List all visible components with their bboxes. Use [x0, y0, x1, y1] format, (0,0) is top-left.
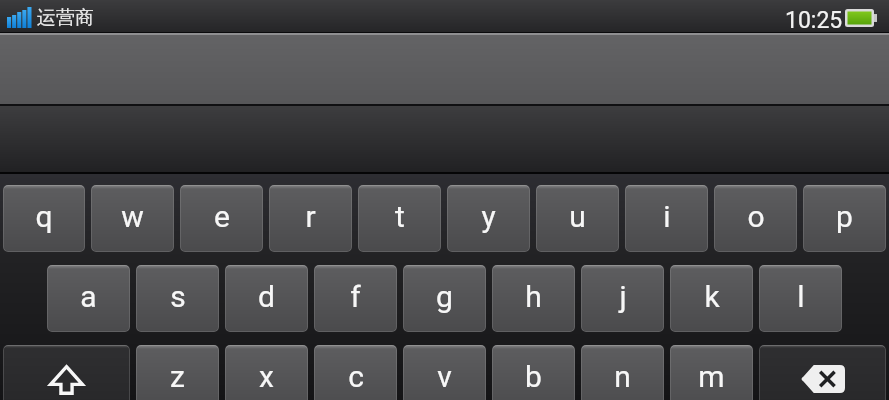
button[interactable]: v: [403, 345, 486, 400]
button[interactable]: c: [314, 345, 397, 400]
button[interactable]: j: [581, 265, 664, 332]
button[interactable]: p: [803, 185, 886, 252]
staticText: 10:25: [785, 7, 843, 34]
button[interactable]: l: [759, 265, 842, 332]
staticText: e: [214, 199, 230, 234]
staticText: v: [437, 359, 452, 394]
button[interactable]: y: [447, 185, 530, 252]
staticText: 运营商: [37, 6, 94, 30]
button[interactable]: d: [225, 265, 308, 332]
staticText: o: [747, 199, 765, 234]
staticText: d: [258, 279, 275, 314]
staticText: y: [481, 199, 496, 234]
button[interactable]: b: [492, 345, 575, 400]
button[interactable]: Delete: [759, 345, 886, 400]
staticText: k: [704, 279, 720, 314]
staticText: s: [170, 279, 186, 314]
button[interactable]: q: [3, 185, 85, 252]
button[interactable]: u: [536, 185, 619, 252]
staticText: u: [569, 199, 586, 234]
button[interactable]: f: [314, 265, 397, 332]
button[interactable]: w: [91, 185, 174, 252]
staticText: i: [663, 199, 671, 234]
staticText: h: [525, 279, 542, 314]
button[interactable]: m: [670, 345, 753, 400]
staticText: w: [121, 199, 144, 234]
staticText: m: [698, 359, 725, 394]
button[interactable]: g: [403, 265, 486, 332]
staticText: q: [35, 199, 53, 234]
button[interactable]: k: [670, 265, 753, 332]
staticText: j: [619, 279, 627, 314]
button[interactable]: a: [47, 265, 130, 332]
button[interactable]: Shift: [3, 345, 130, 400]
staticText: g: [436, 279, 453, 314]
staticText: x: [259, 359, 274, 394]
staticText: a: [80, 279, 97, 314]
staticText: n: [614, 359, 631, 394]
staticText: r: [305, 199, 316, 234]
button[interactable]: z: [136, 345, 219, 400]
button[interactable]: i: [625, 185, 708, 252]
staticText: b: [525, 359, 542, 394]
staticText: c: [348, 359, 364, 394]
staticText: l: [797, 279, 805, 314]
button[interactable]: n: [581, 345, 664, 400]
button[interactable]: x: [225, 345, 308, 400]
staticText: p: [836, 199, 853, 234]
button[interactable]: e: [180, 185, 263, 252]
button[interactable]: h: [492, 265, 575, 332]
button[interactable]: r: [269, 185, 352, 252]
button[interactable]: o: [714, 185, 797, 252]
staticText: z: [170, 359, 185, 394]
staticText: f: [350, 279, 361, 314]
button[interactable]: t: [358, 185, 441, 252]
button[interactable]: s: [136, 265, 219, 332]
staticText: t: [395, 199, 405, 234]
